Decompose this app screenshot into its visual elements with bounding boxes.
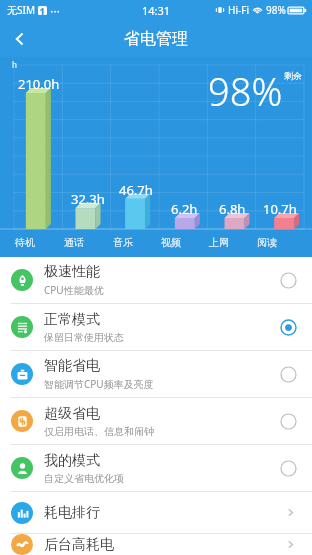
button[interactable]: 极速性能 — [0, 257, 312, 303]
staticText: 98% — [208, 65, 283, 117]
staticText: 省电管理 — [124, 29, 188, 49]
staticText: 待机 — [15, 236, 35, 249]
button[interactable]: Selected — [279, 318, 298, 337]
staticText: 保留日常使用状态 — [44, 331, 124, 344]
button[interactable]: Not selected — [279, 271, 298, 290]
staticText: 耗电排行 — [44, 504, 285, 522]
staticText: 智能调节CPU频率及亮度 — [44, 377, 154, 391]
staticText: 剩余 — [284, 70, 302, 81]
button[interactable]: 耗电排行 — [0, 492, 312, 533]
staticText: 上网 — [209, 236, 229, 249]
button[interactable]: 超级省电 — [0, 398, 312, 444]
staticText: 98% — [266, 3, 286, 17]
button[interactable]: Not selected — [279, 365, 298, 384]
staticText: 10.7h — [263, 200, 297, 218]
staticText: 32.3h — [71, 190, 105, 208]
staticText: 极速性能 — [44, 263, 100, 281]
button[interactable]: 智能省电 — [0, 351, 312, 397]
staticText: 210.0h — [18, 75, 60, 93]
staticText: h — [12, 59, 17, 70]
staticText: 6.2h — [171, 200, 198, 218]
staticText: 智能省电 — [44, 357, 100, 375]
staticText: 我的模式 — [44, 452, 100, 470]
staticText: 6.8h — [219, 200, 246, 218]
button[interactable]: Not selected — [279, 412, 298, 431]
staticText: 通话 — [64, 236, 84, 249]
staticText: 46.7h — [119, 181, 153, 199]
button[interactable]: 后台高耗电 — [0, 534, 312, 555]
staticText: 14:31 — [142, 3, 171, 18]
staticText: CPU性能最优 — [44, 283, 104, 297]
button[interactable]: 我的模式 — [0, 445, 312, 491]
staticText: 视频 — [161, 236, 181, 249]
staticText: 超级省电 — [44, 405, 100, 423]
staticText: 阅读 — [257, 236, 277, 249]
staticText: 无SIM — [7, 3, 35, 17]
staticText: 后台高耗电 — [44, 536, 285, 554]
button[interactable]: Not selected — [279, 459, 298, 478]
staticText: 自定义省电优化项 — [44, 472, 124, 485]
button[interactable]: 正常模式 — [0, 304, 312, 350]
button[interactable]: Back — [0, 20, 40, 57]
staticText: 音乐 — [113, 236, 133, 249]
staticText: 正常模式 — [44, 311, 100, 329]
staticText: 仅启用电话、信息和闹钟 — [44, 425, 154, 438]
staticText: Hi-Fi — [228, 3, 249, 17]
